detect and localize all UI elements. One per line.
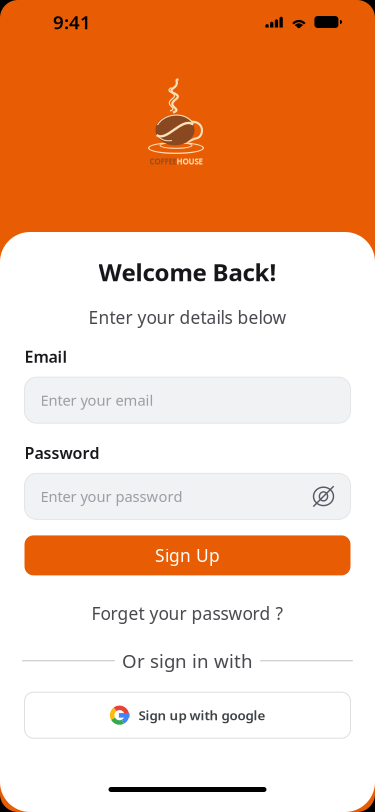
staticText: Welcome Back!: [98, 256, 276, 288]
staticText: Sign Up: [155, 544, 220, 567]
staticText: COFFEE: [149, 156, 176, 167]
staticText: Or sign in with: [122, 648, 253, 673]
staticText: 9:41: [53, 10, 91, 34]
button[interactable]: Forget your password ?: [91, 598, 283, 628]
staticText: Enter your password: [40, 487, 182, 506]
staticText: HOUSE: [176, 156, 202, 167]
staticText: Password: [24, 442, 99, 463]
staticText: Email: [24, 346, 67, 367]
staticText: Enter your details below: [88, 306, 286, 329]
staticText: Sign up with google: [138, 706, 265, 724]
staticText: Enter your email: [40, 390, 153, 410]
button[interactable]: Sign Up: [24, 535, 350, 575]
button[interactable]: Sign up with google: [24, 692, 350, 738]
staticText: Forget your password ?: [91, 602, 283, 625]
